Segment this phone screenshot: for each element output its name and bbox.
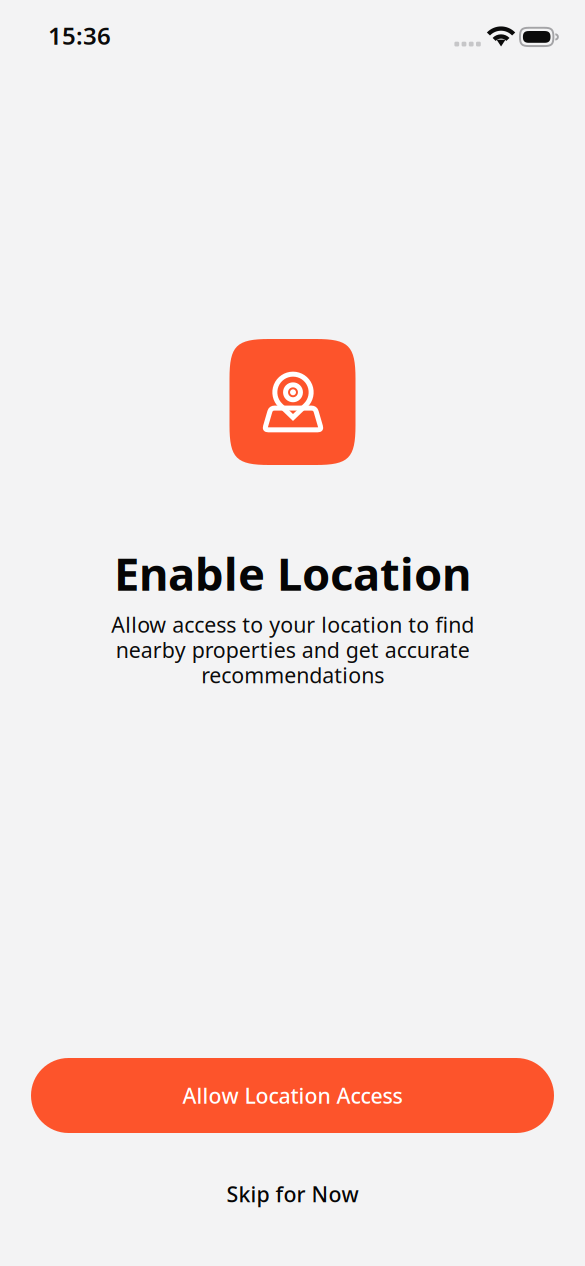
staticText: Allow Location Access xyxy=(182,1081,402,1110)
staticText: Allow access to your location to find ne… xyxy=(111,610,474,689)
staticText: Skip for Now xyxy=(226,1180,358,1208)
staticText: 15:36 xyxy=(48,20,111,51)
button[interactable]: Skip for Now xyxy=(226,1174,358,1214)
button[interactable]: Allow Location Access xyxy=(31,1058,554,1133)
staticText: Enable Location xyxy=(114,543,471,603)
